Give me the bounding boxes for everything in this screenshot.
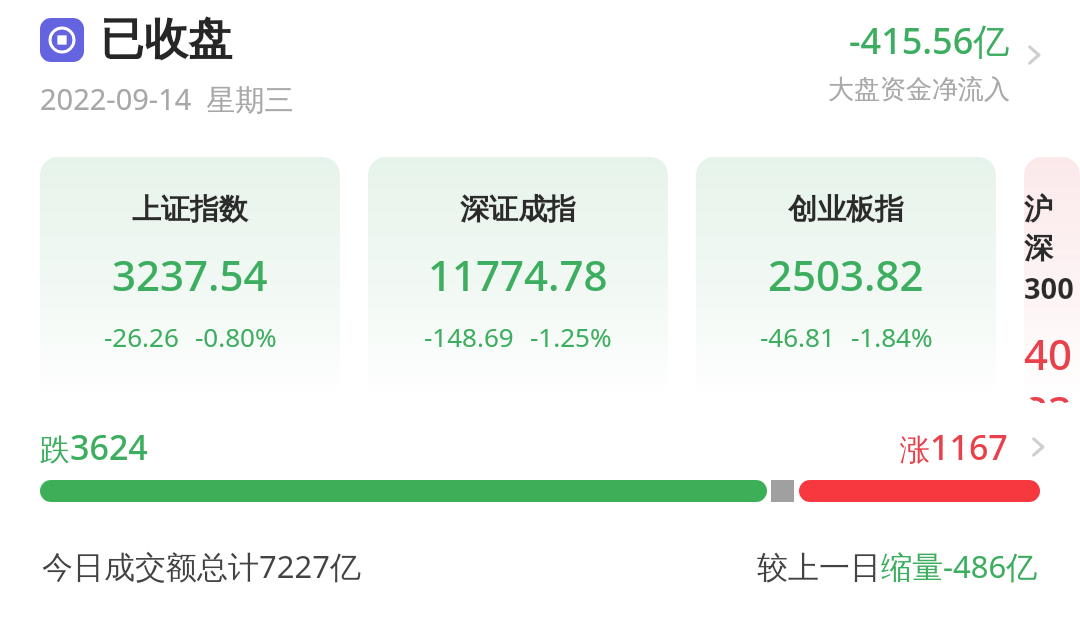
button[interactable]: 创业板指: [696, 157, 996, 403]
button[interactable]: Up and down details: [1018, 427, 1058, 467]
button[interactable]: -415.56亿: [828, 12, 1054, 106]
staticText: 大盘资金净流入: [828, 73, 1010, 106]
staticText: 今日成交额总计7227亿: [42, 545, 361, 587]
staticText: -1.25%: [530, 319, 612, 354]
staticText: 沪深300: [1024, 191, 1080, 307]
staticText: -26.26: [104, 319, 179, 354]
staticText: 上证指数: [132, 191, 248, 228]
staticText: 创业板指: [788, 191, 904, 228]
staticText: 较上一日缩量-486亿: [757, 545, 1038, 587]
staticText: 2503.82: [768, 246, 924, 303]
staticText: 涨1167: [900, 424, 1008, 470]
other: Market closed: [40, 18, 84, 62]
staticText: 跌3624: [40, 424, 148, 470]
staticText: -46.81: [760, 319, 835, 354]
staticText: 深证成指: [460, 191, 576, 228]
button[interactable]: 跌3624: [40, 424, 1054, 502]
button[interactable]: Capital flow details: [1014, 35, 1054, 75]
staticText: 11774.78: [428, 246, 608, 303]
staticText: -148.69: [424, 319, 514, 354]
staticText: -1.84%: [851, 319, 933, 354]
staticText: 2022-09-14 星期三: [40, 79, 294, 119]
staticText: 已收盘: [100, 12, 232, 67]
staticText: -0.80%: [195, 319, 277, 354]
staticText: -415.56亿: [849, 16, 1010, 65]
button[interactable]: 深证成指: [368, 157, 668, 403]
button[interactable]: 沪深300: [1024, 157, 1080, 403]
staticText: 3237.54: [112, 246, 268, 303]
button[interactable]: 上证指数: [40, 157, 340, 403]
staticText: 4033.50: [1024, 325, 1080, 403]
